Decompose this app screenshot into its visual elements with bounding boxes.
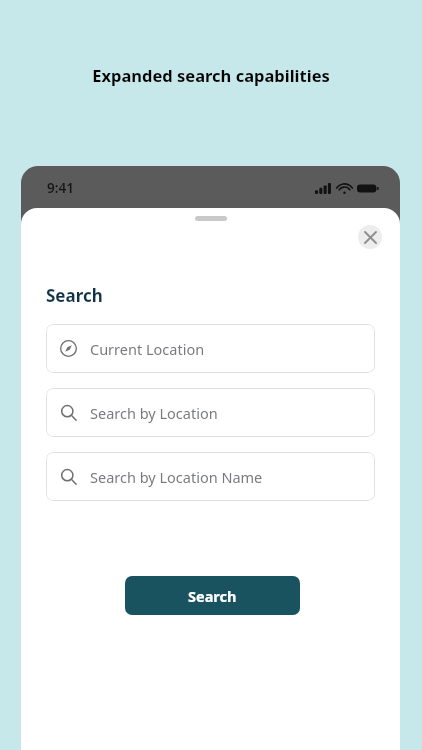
- staticText: Expanded search capabilities: [0, 64, 422, 86]
- staticText: 9:41: [47, 179, 74, 197]
- staticText: Search by Location Name: [90, 467, 263, 487]
- button[interactable]: Current Location: [46, 324, 375, 373]
- staticText: Current Location: [90, 339, 205, 359]
- button[interactable]: Search by Location Name: [46, 452, 375, 501]
- staticText: Search: [188, 586, 237, 606]
- staticText: Search: [46, 284, 103, 307]
- button[interactable]: Close: [358, 225, 382, 249]
- staticText: Search by Location: [90, 403, 218, 423]
- button[interactable]: Search by Location: [46, 388, 375, 437]
- button[interactable]: Search: [125, 576, 300, 615]
